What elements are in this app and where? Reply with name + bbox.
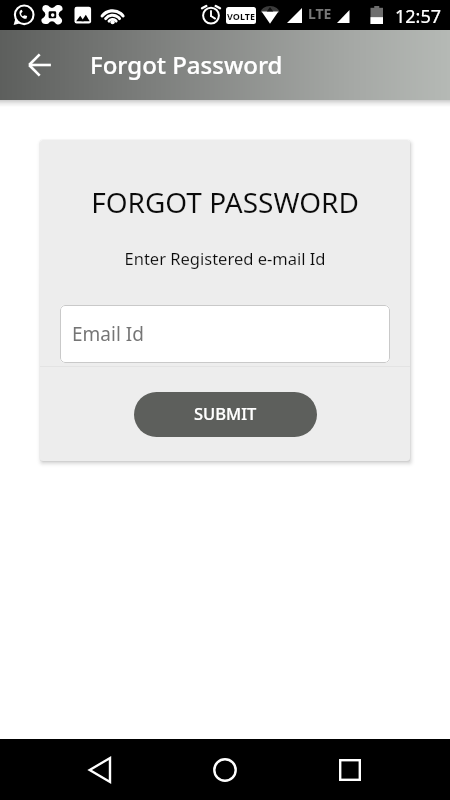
button[interactable]: Recents bbox=[326, 746, 374, 794]
staticText: SUBMIT bbox=[194, 402, 257, 424]
staticText: VOLTE bbox=[227, 10, 255, 22]
staticText: 12:57 bbox=[395, 4, 442, 29]
staticText: Enter Registered e-mail Id bbox=[40, 247, 410, 269]
staticText: Forgot Password bbox=[90, 48, 283, 81]
button[interactable]: Home bbox=[201, 746, 249, 794]
button[interactable]: SUBMIT bbox=[134, 392, 317, 437]
staticText: FORGOT PASSWORD bbox=[40, 183, 410, 221]
button[interactable]: Email Id bbox=[60, 305, 390, 363]
button[interactable]: Back bbox=[76, 746, 124, 794]
button[interactable]: Back bbox=[18, 43, 62, 87]
staticText: LTE bbox=[308, 4, 332, 23]
staticText: Email Id bbox=[72, 321, 144, 347]
